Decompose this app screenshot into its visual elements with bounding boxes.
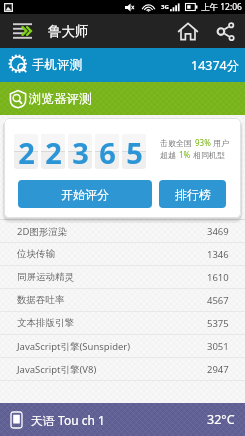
button[interactable]: 排行榜 [159, 180, 226, 208]
staticText: JavaScript引擎(Sunspider) [17, 340, 131, 353]
staticText: 浏览器评测 [29, 91, 92, 107]
staticText: 2D图形渲染 [17, 225, 68, 238]
button[interactable]: 浏览器评测 [0, 82, 245, 115]
staticText: 5 [126, 134, 143, 168]
staticText: 2 [18, 134, 35, 168]
staticText: 3G [161, 3, 169, 11]
staticText: 开始评分 [61, 187, 109, 202]
staticText: 3051 [207, 340, 229, 353]
button[interactable]: 数据吞吐率 [0, 289, 245, 311]
staticText: 4567 [207, 294, 229, 307]
staticText: 手机评测 [32, 57, 82, 73]
staticText: 上午 12:06 [201, 1, 242, 13]
button[interactable]: JavaScript引擎(Sunspider) [0, 335, 245, 357]
button[interactable]: 文本排版引擎 [0, 312, 245, 334]
staticText: 3469 [207, 225, 229, 238]
staticText: 同屏运动精灵 [17, 271, 74, 283]
staticText: 1610 [207, 271, 229, 284]
staticText: 1346 [207, 248, 229, 261]
staticText: 6 [99, 134, 116, 168]
staticText: 2 [45, 134, 62, 168]
button[interactable]: Share [207, 14, 244, 48]
button[interactable]: 位块传输 [0, 243, 245, 265]
button[interactable]: JavaScript引擎(V8) [0, 358, 245, 380]
staticText: 3 [72, 134, 89, 168]
staticText: 超越 [160, 149, 179, 160]
staticText: JavaScript引擎(V8) [17, 363, 97, 376]
button[interactable]: 手机评测 [0, 48, 245, 82]
staticText: 数据吞吐率 [17, 294, 65, 306]
staticText: 鲁大师 [48, 23, 89, 40]
staticText: 击败全国 [160, 137, 195, 148]
button[interactable]: 同屏运动精灵 [0, 266, 245, 288]
staticText: 位块传输 [17, 248, 55, 260]
staticText: 用户 [211, 137, 230, 148]
button[interactable]: 天语 Tou ch 1 [0, 403, 245, 436]
staticText: 排行榜 [175, 187, 211, 202]
button[interactable]: Home [169, 14, 207, 48]
staticText: 93% [195, 137, 211, 148]
button[interactable]: 开始评分 [18, 180, 152, 208]
staticText: 32°C [207, 411, 235, 428]
button[interactable]: 2D图形渲染 [0, 220, 245, 242]
staticText: 2947 [207, 363, 229, 376]
staticText: 14374分 [191, 57, 240, 74]
staticText: 文本排版引擎 [17, 317, 74, 329]
staticText: 天语 Tou ch 1 [31, 412, 105, 428]
staticText: 5375 [207, 317, 229, 330]
staticText: 相同机型 [191, 149, 226, 160]
staticText: 1% [179, 149, 191, 160]
button[interactable]: Menu [0, 14, 48, 48]
